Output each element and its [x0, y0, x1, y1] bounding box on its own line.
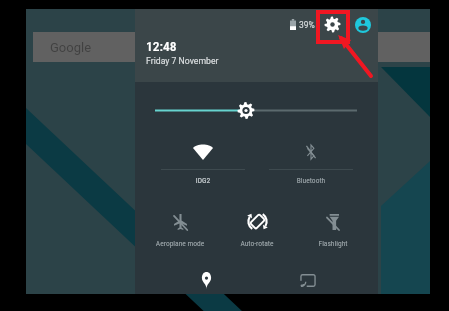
staticText: Bluetooth: [267, 176, 355, 185]
staticText: Auto-rotate: [220, 239, 294, 248]
staticText: Aeroplane mode: [143, 239, 217, 248]
button[interactable]: Location: [184, 272, 228, 289]
staticText: 12:48: [146, 38, 177, 54]
button[interactable]: Bluetooth: [267, 130, 355, 192]
button[interactable]: Aeroplane mode: [143, 205, 217, 253]
staticText: Friday 7 November: [146, 56, 219, 66]
button[interactable]: Cast screen: [286, 272, 330, 289]
button[interactable]: Google: [33, 32, 430, 62]
button[interactable]: User profile: [355, 17, 371, 33]
button[interactable]: Settings: [324, 16, 341, 33]
button[interactable]: Auto-rotate: [220, 205, 294, 253]
button[interactable]: Flashlight: [296, 205, 370, 253]
staticText: IDG2: [159, 176, 247, 185]
staticText: Google: [50, 40, 92, 55]
staticText: Flashlight: [296, 239, 370, 248]
button[interactable]: Brightness: [135, 82, 378, 127]
staticText: 39%: [299, 20, 315, 30]
button[interactable]: IDG2: [159, 130, 247, 192]
